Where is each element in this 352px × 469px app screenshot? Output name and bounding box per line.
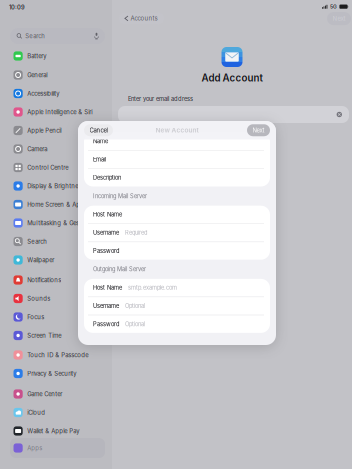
button[interactable]: Search (0, 233, 160, 249)
staticText: Next (252, 127, 264, 134)
staticText: Host Name (93, 211, 122, 218)
button[interactable]: Password (84, 315, 270, 333)
button[interactable]: Accounts (119, 13, 164, 24)
staticText: Required (125, 229, 147, 236)
button[interactable]: Home Screen & App Library (0, 196, 160, 212)
staticText: Enter your email address (128, 95, 193, 102)
staticText: Screen Time (27, 332, 61, 339)
staticText: Battery (27, 52, 46, 60)
staticText: Notifications (27, 276, 61, 284)
staticText: Search (25, 32, 45, 40)
staticText: Password (93, 321, 119, 328)
staticText: Username (93, 229, 119, 236)
staticText: Game Center (27, 390, 62, 398)
button[interactable]: Notifications (0, 272, 160, 288)
button[interactable]: Wallpaper (0, 252, 160, 268)
staticText: Accessibility (27, 90, 59, 97)
staticText: Apple Pencil (27, 127, 61, 134)
button[interactable]: Focus (0, 309, 160, 325)
button[interactable]: Touch ID & Passcode (0, 347, 160, 363)
staticText: Sounds (27, 295, 50, 302)
staticText: Control Centre (27, 164, 68, 171)
button[interactable]: Screen Time (0, 327, 160, 343)
button[interactable]: Username (84, 297, 270, 315)
staticText: Optional (125, 302, 145, 309)
button[interactable]: Host Name (84, 206, 270, 223)
button[interactable]: Wallet & Apple Pay (0, 423, 160, 439)
button[interactable]: General (0, 67, 160, 83)
button[interactable]: Password (84, 242, 270, 260)
button[interactable]: Apps (10, 438, 105, 458)
staticText: Add Account (201, 72, 262, 84)
button[interactable]: Game Center (0, 386, 160, 402)
button[interactable]: Host Name (84, 279, 270, 296)
staticText: Outgoing Mail Server (93, 266, 146, 273)
staticText: Touch ID & Passcode (27, 351, 88, 359)
button[interactable]: Username (84, 224, 270, 241)
staticText: Email (93, 156, 106, 163)
button[interactable]: Apple Pencil (0, 122, 160, 138)
button[interactable]: Accessibility (0, 85, 160, 101)
staticText: Display & Brightness (27, 182, 84, 190)
button[interactable]: Email (84, 151, 270, 168)
button[interactable]: Display & Brightness (0, 178, 160, 194)
staticText: Wallpaper (27, 256, 54, 264)
staticText: Privacy & Security (27, 370, 76, 377)
staticText: Wallet & Apple Pay (27, 427, 79, 435)
staticText: Camera (27, 145, 47, 153)
button[interactable]: Control Centre (0, 159, 160, 175)
staticText: Description (93, 174, 121, 181)
button[interactable]: Multitasking & Gestures (0, 215, 160, 231)
staticText: Cancel (89, 127, 107, 134)
staticText: smtp.example.com (128, 284, 177, 291)
button[interactable]: Battery (0, 48, 160, 64)
button[interactable]: Name (84, 132, 270, 150)
button[interactable]: Description (84, 169, 270, 186)
button[interactable]: Cancel (84, 124, 113, 136)
staticText: Search (27, 238, 47, 245)
button[interactable]: Next (247, 124, 270, 136)
button[interactable]: Camera (0, 141, 160, 157)
staticText: Apple Intelligence & Siri (27, 108, 92, 116)
staticText: Home Screen & App Library (27, 201, 104, 208)
staticText: Password (93, 247, 119, 254)
staticText: 5G (330, 4, 337, 10)
staticText: Optional (125, 321, 145, 328)
staticText: Incoming Mail Server (93, 193, 147, 200)
staticText: Multitasking & Gestures (27, 219, 93, 227)
staticText: Name (93, 138, 108, 145)
staticText: Accounts (131, 15, 158, 22)
staticText: Username (93, 302, 119, 309)
button[interactable]: iCloud (0, 404, 160, 420)
staticText: Host Name (93, 284, 122, 291)
button[interactable]: Privacy & Security (0, 365, 160, 381)
staticText: Next (332, 15, 345, 22)
button[interactable]: Sounds (0, 290, 160, 306)
staticText: Apps (27, 444, 42, 452)
staticText: General (27, 71, 47, 79)
staticText: 10:09 (9, 4, 25, 11)
staticText: iCloud (27, 409, 45, 416)
staticText: New Account (155, 126, 198, 134)
staticText: Focus (27, 313, 44, 321)
button[interactable]: Apple Intelligence & Siri (0, 104, 160, 120)
